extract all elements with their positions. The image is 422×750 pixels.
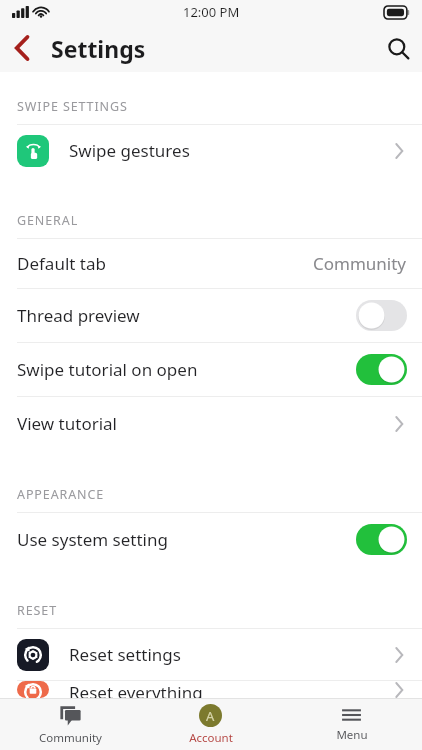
button[interactable]: On [356,524,407,555]
staticText: 12:00 PM [183,3,240,21]
staticText: Swipe tutorial on open [17,358,198,381]
button[interactable]: Thread preview [0,289,422,342]
staticText: Thread preview [17,304,140,327]
button[interactable]: Use system setting [0,513,422,566]
staticText: Use system setting [17,528,168,551]
staticText: Community [39,730,102,746]
button[interactable]: Off [356,300,407,331]
staticText: Menu [336,727,368,743]
button[interactable]: Reset everything [0,681,422,698]
button[interactable]: Back [0,26,44,70]
staticText: RESET [17,602,57,619]
staticText: Default tab [17,252,106,275]
button[interactable]: Swipe tutorial on open [0,343,422,396]
staticText: Account [189,730,233,746]
button[interactable]: Search [374,24,422,72]
staticText: A [206,707,215,725]
staticText: View tutorial [17,412,118,435]
staticText: APPEARANCE [17,486,105,503]
staticText: SWIPE SETTINGS [17,98,128,115]
staticText: Settings [51,33,146,64]
button[interactable]: View tutorial [0,397,422,450]
button[interactable]: A [140,699,281,750]
button[interactable]: Menu [281,699,422,750]
staticText: GENERAL [17,212,79,229]
button[interactable]: Swipe gestures [0,125,422,176]
staticText: Swipe gestures [69,139,190,162]
button[interactable]: Reset settings [0,629,422,680]
button[interactable]: Default tab [0,239,422,288]
staticText: Reset everything [69,681,203,698]
button[interactable]: Community [0,699,140,750]
staticText: Community [313,252,407,275]
button[interactable]: On [356,354,407,385]
staticText: Reset settings [69,643,181,666]
